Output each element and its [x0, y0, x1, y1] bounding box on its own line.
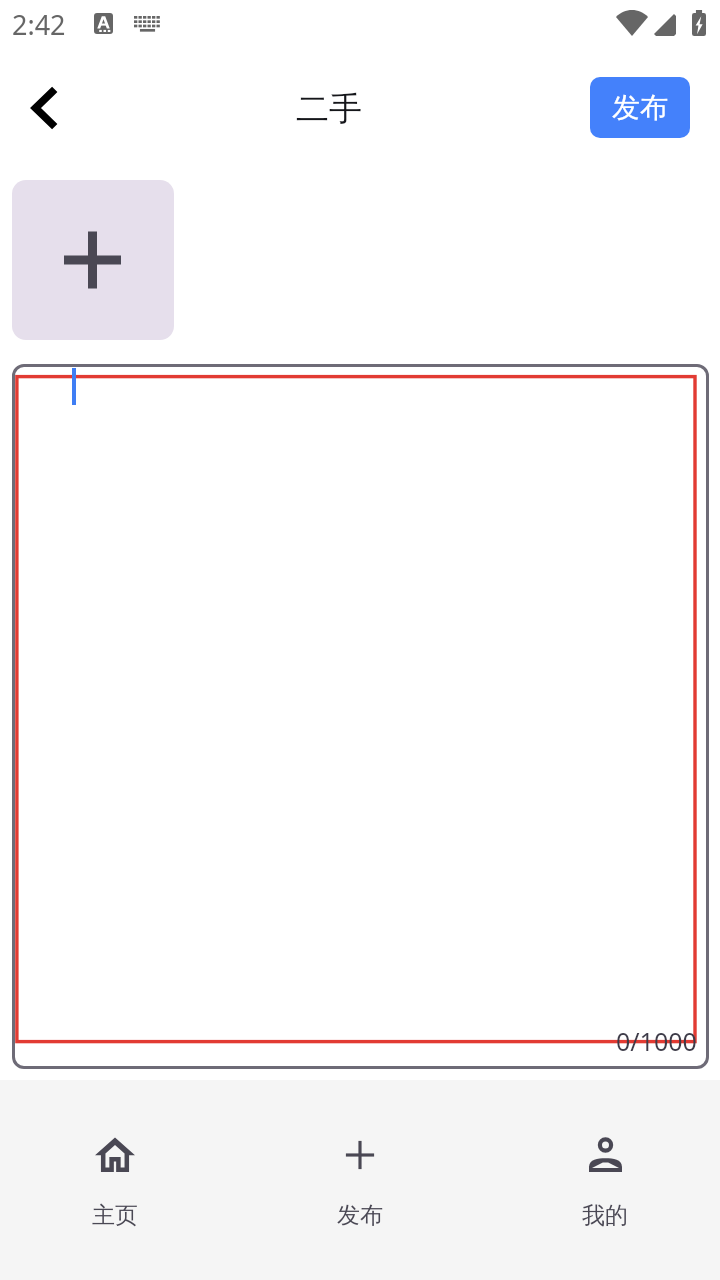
button[interactable]: 主页 — [45, 1080, 185, 1280]
button[interactable]: 发布 — [290, 1080, 430, 1280]
staticText: 我的 — [582, 1201, 628, 1230]
button[interactable]: 0/1000 — [12, 364, 709, 1069]
button[interactable]: Back — [10, 74, 78, 142]
button[interactable]: 发布 — [590, 77, 690, 138]
staticText: 0/1000 — [616, 1024, 697, 1058]
staticText: 二手 — [296, 88, 362, 130]
staticText: 2:42 — [12, 6, 66, 43]
button[interactable]: 我的 — [535, 1080, 675, 1280]
staticText: 主页 — [92, 1201, 138, 1230]
staticText: 发布 — [337, 1201, 383, 1230]
button[interactable]: Add photo — [12, 180, 174, 340]
staticText: 发布 — [612, 90, 668, 125]
